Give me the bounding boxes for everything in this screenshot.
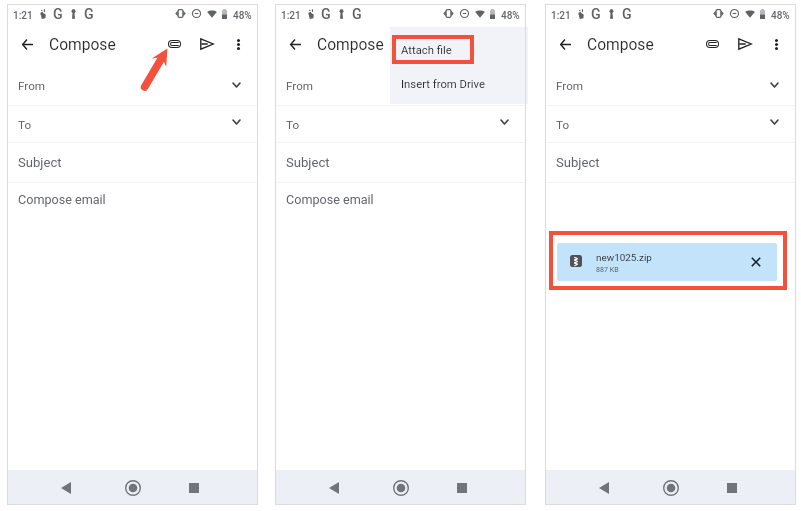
- button[interactable]: Home: [120, 474, 145, 501]
- staticText: Insert from Drive: [401, 78, 485, 91]
- button[interactable]: new1025.zip: [557, 243, 777, 281]
- button[interactable]: Send: [730, 29, 759, 59]
- staticText: From: [286, 79, 314, 93]
- button[interactable]: Send: [460, 29, 489, 59]
- button[interactable]: [7, 66, 258, 105]
- staticText: To: [18, 118, 32, 132]
- staticText: Subject: [18, 155, 62, 170]
- staticText: 1:21: [551, 10, 571, 22]
- staticText: Attach file: [401, 44, 452, 57]
- staticText: G: [84, 6, 94, 23]
- button[interactable]: Recent apps: [449, 474, 474, 501]
- staticText: 1:21: [13, 10, 33, 22]
- staticText: Compose email: [18, 192, 106, 207]
- staticText: G: [622, 6, 632, 23]
- staticText: To: [286, 118, 300, 132]
- staticText: Compose: [317, 36, 384, 54]
- button[interactable]: Navigate up: [12, 29, 42, 59]
- staticText: From: [18, 79, 46, 93]
- button[interactable]: Recent apps: [719, 474, 744, 501]
- button[interactable]: More options: [762, 29, 791, 59]
- button[interactable]: Attach file: [432, 29, 452, 59]
- button[interactable]: [275, 66, 526, 105]
- staticText: Subject: [556, 155, 600, 170]
- staticText: G: [53, 6, 63, 23]
- staticText: From: [556, 79, 584, 93]
- button[interactable]: [275, 105, 526, 141]
- staticText: 48%: [233, 10, 252, 22]
- staticText: 48%: [501, 10, 520, 22]
- staticText: Compose email: [286, 192, 374, 207]
- button[interactable]: Attach file: [164, 29, 184, 59]
- staticText: Subject: [286, 155, 330, 170]
- button[interactable]: Back: [591, 474, 616, 501]
- staticText: To: [556, 118, 570, 132]
- button[interactable]: Back: [321, 474, 346, 501]
- button[interactable]: [545, 105, 796, 141]
- button[interactable]: [545, 142, 796, 182]
- button[interactable]: Home: [388, 474, 413, 501]
- button[interactable]: Insert from Drive: [390, 65, 528, 101]
- staticText: 887 KB: [596, 265, 619, 273]
- button[interactable]: [275, 182, 526, 222]
- button[interactable]: [7, 142, 258, 182]
- button[interactable]: Navigate up: [550, 29, 580, 59]
- staticText: 48%: [771, 10, 790, 22]
- button[interactable]: Attach file: [702, 29, 722, 59]
- staticText: Compose: [49, 36, 116, 54]
- button[interactable]: Home: [658, 474, 683, 501]
- button[interactable]: [545, 66, 796, 105]
- staticText: G: [591, 6, 601, 23]
- staticText: new1025.zip: [596, 252, 652, 264]
- button[interactable]: Recent apps: [181, 474, 206, 501]
- staticText: G: [321, 6, 331, 23]
- button[interactable]: [7, 182, 258, 222]
- button[interactable]: Attach file: [390, 29, 528, 65]
- button[interactable]: Back: [53, 474, 78, 501]
- staticText: 1:21: [281, 10, 301, 22]
- staticText: Compose: [587, 36, 654, 54]
- button[interactable]: Send: [192, 29, 221, 59]
- button[interactable]: [275, 142, 526, 182]
- button[interactable]: More options: [224, 29, 253, 59]
- button[interactable]: Remove attachment: [744, 250, 768, 274]
- button[interactable]: Navigate up: [280, 29, 310, 59]
- button[interactable]: [7, 105, 258, 141]
- staticText: G: [352, 6, 362, 23]
